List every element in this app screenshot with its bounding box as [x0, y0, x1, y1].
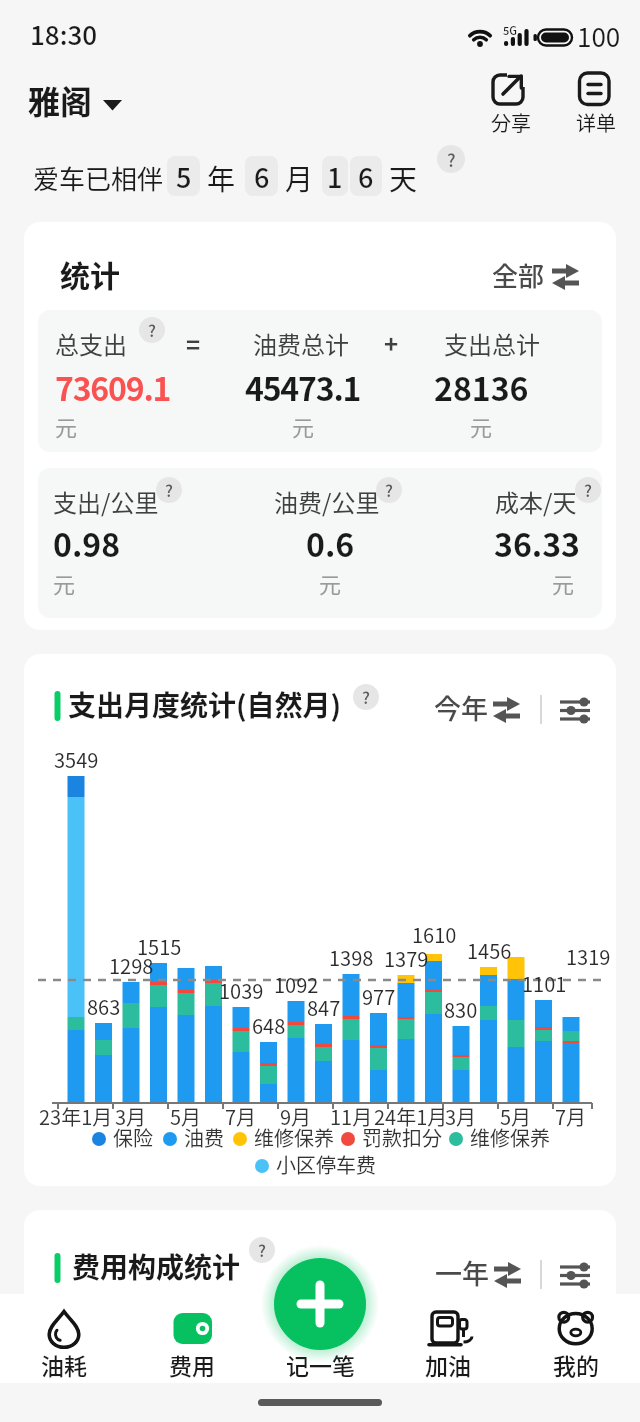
button[interactable]: ?: [156, 477, 182, 503]
staticText: 9月: [280, 1102, 312, 1131]
staticText: 1: [327, 157, 343, 196]
staticText: 记一笔: [286, 1348, 355, 1381]
staticText: 648: [252, 1011, 286, 1040]
staticText: 7月: [225, 1102, 257, 1131]
staticText: 45473.1: [245, 364, 361, 410]
staticText: ?: [362, 685, 370, 709]
staticText: 月: [285, 158, 314, 199]
staticText: 1456: [467, 936, 512, 965]
staticText: 1610: [412, 920, 457, 949]
staticText: 支出/公里: [53, 484, 159, 519]
staticText: 油费总计: [253, 326, 349, 361]
staticText: 今年: [434, 688, 488, 727]
staticText: ?: [165, 478, 173, 502]
staticText: 3549: [54, 745, 99, 774]
button[interactable]: [425, 1251, 525, 1297]
staticText: 1298: [109, 951, 154, 980]
staticText: 1039: [219, 976, 264, 1005]
staticText: 元: [53, 567, 76, 599]
button[interactable]: [424, 686, 524, 732]
staticText: 3月: [115, 1102, 147, 1131]
staticText: 36.33: [494, 520, 580, 566]
staticText: ?: [584, 478, 592, 502]
button[interactable]: ?: [139, 317, 165, 343]
staticText: 小区停车费: [276, 1150, 376, 1179]
staticText: 1092: [274, 970, 319, 999]
staticText: 维修保养: [254, 1123, 334, 1152]
staticText: ?: [258, 1238, 266, 1262]
button[interactable]: [274, 1258, 366, 1350]
staticText: 罚款扣分: [362, 1123, 442, 1152]
staticText: 费用: [169, 1348, 215, 1381]
staticText: 5月: [500, 1102, 532, 1131]
staticText: 1319: [566, 942, 611, 971]
staticText: 一年: [435, 1253, 489, 1292]
staticText: 爱车已相伴: [33, 159, 164, 197]
staticText: 11月: [330, 1102, 373, 1131]
staticText: 830: [444, 995, 478, 1024]
button[interactable]: [14, 1300, 114, 1380]
staticText: 我的: [553, 1348, 599, 1381]
staticText: 1398: [329, 943, 374, 972]
staticText: 元: [319, 567, 342, 599]
button[interactable]: [398, 1300, 498, 1380]
staticText: 维修保养: [470, 1123, 550, 1152]
button[interactable]: ?: [353, 684, 379, 710]
staticText: 元: [292, 410, 315, 442]
button[interactable]: [480, 252, 584, 300]
staticText: 总支出: [55, 326, 127, 361]
button[interactable]: [526, 1300, 626, 1380]
staticText: 977: [362, 982, 396, 1011]
staticText: 油费/公里: [274, 484, 380, 519]
staticText: 3月: [445, 1102, 477, 1131]
staticText: 年: [207, 158, 236, 199]
staticText: 1515: [137, 932, 182, 961]
staticText: =: [186, 326, 201, 361]
button[interactable]: [484, 66, 534, 136]
staticText: 成本/天: [495, 484, 577, 519]
staticText: ?: [385, 478, 393, 502]
button[interactable]: [570, 66, 620, 136]
staticText: 18:30: [30, 15, 98, 53]
staticText: 保险: [113, 1123, 153, 1152]
staticText: 24年1月: [374, 1102, 448, 1131]
staticText: 元: [55, 410, 78, 442]
staticText: 847: [307, 993, 341, 1022]
staticText: 23年1月: [39, 1102, 113, 1131]
staticText: 分享: [491, 108, 531, 137]
staticText: 天: [389, 158, 418, 199]
button[interactable]: ?: [437, 145, 465, 173]
staticText: 详单: [576, 108, 616, 137]
staticText: 1379: [384, 944, 429, 973]
staticText: 863: [87, 992, 121, 1021]
staticText: 5G: [503, 22, 517, 38]
staticText: 元: [552, 567, 575, 599]
staticText: 加油: [425, 1348, 471, 1381]
button[interactable]: [142, 1300, 242, 1380]
button[interactable]: ?: [376, 477, 402, 503]
button[interactable]: ?: [575, 477, 601, 503]
staticText: 雅阁: [28, 77, 93, 123]
staticText: 100: [577, 17, 621, 55]
staticText: 统计: [60, 252, 120, 295]
button[interactable]: [20, 80, 130, 130]
staticText: 28136: [434, 364, 529, 410]
staticText: 1101: [522, 969, 567, 998]
staticText: ?: [447, 147, 456, 172]
staticText: +: [384, 325, 399, 360]
staticText: 5月: [170, 1102, 202, 1131]
button[interactable]: ?: [249, 1237, 275, 1263]
staticText: 5: [176, 157, 192, 196]
staticText: 支出月度统计(自然月): [68, 684, 342, 725]
staticText: ?: [148, 318, 156, 342]
staticText: 73609.1: [55, 364, 171, 410]
staticText: 7月: [555, 1102, 587, 1131]
button[interactable]: [548, 692, 598, 734]
button[interactable]: [548, 1257, 598, 1299]
staticText: 全部: [492, 256, 545, 294]
staticText: 油耗: [41, 1348, 87, 1381]
staticText: 6: [254, 157, 270, 196]
staticText: 0.98: [53, 520, 121, 566]
staticText: 元: [470, 410, 493, 442]
staticText: 支出总计: [444, 326, 540, 361]
